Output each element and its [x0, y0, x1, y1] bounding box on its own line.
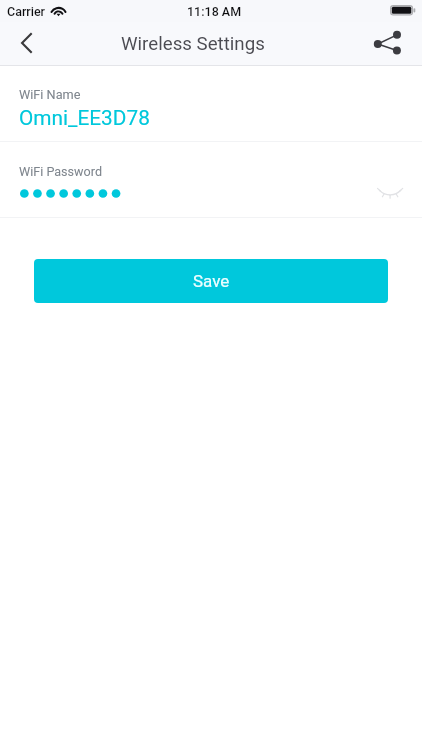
staticText: Wireless Settings — [121, 33, 265, 55]
button[interactable]: Show password — [372, 176, 408, 212]
staticText: Omni_EE3D78 — [19, 106, 150, 130]
button[interactable]: WiFi Name — [0, 66, 422, 141]
staticText: WiFi Name — [19, 87, 81, 102]
staticText: WiFi Password — [19, 164, 103, 179]
button[interactable]: WiFi Password — [0, 142, 422, 217]
staticText: Save — [193, 271, 230, 291]
button[interactable]: Save — [34, 259, 388, 303]
staticText: 11:18 AM — [187, 4, 242, 19]
button[interactable]: Back — [4, 22, 48, 66]
button[interactable]: Share — [366, 22, 410, 66]
staticText: Carrier — [7, 4, 46, 19]
